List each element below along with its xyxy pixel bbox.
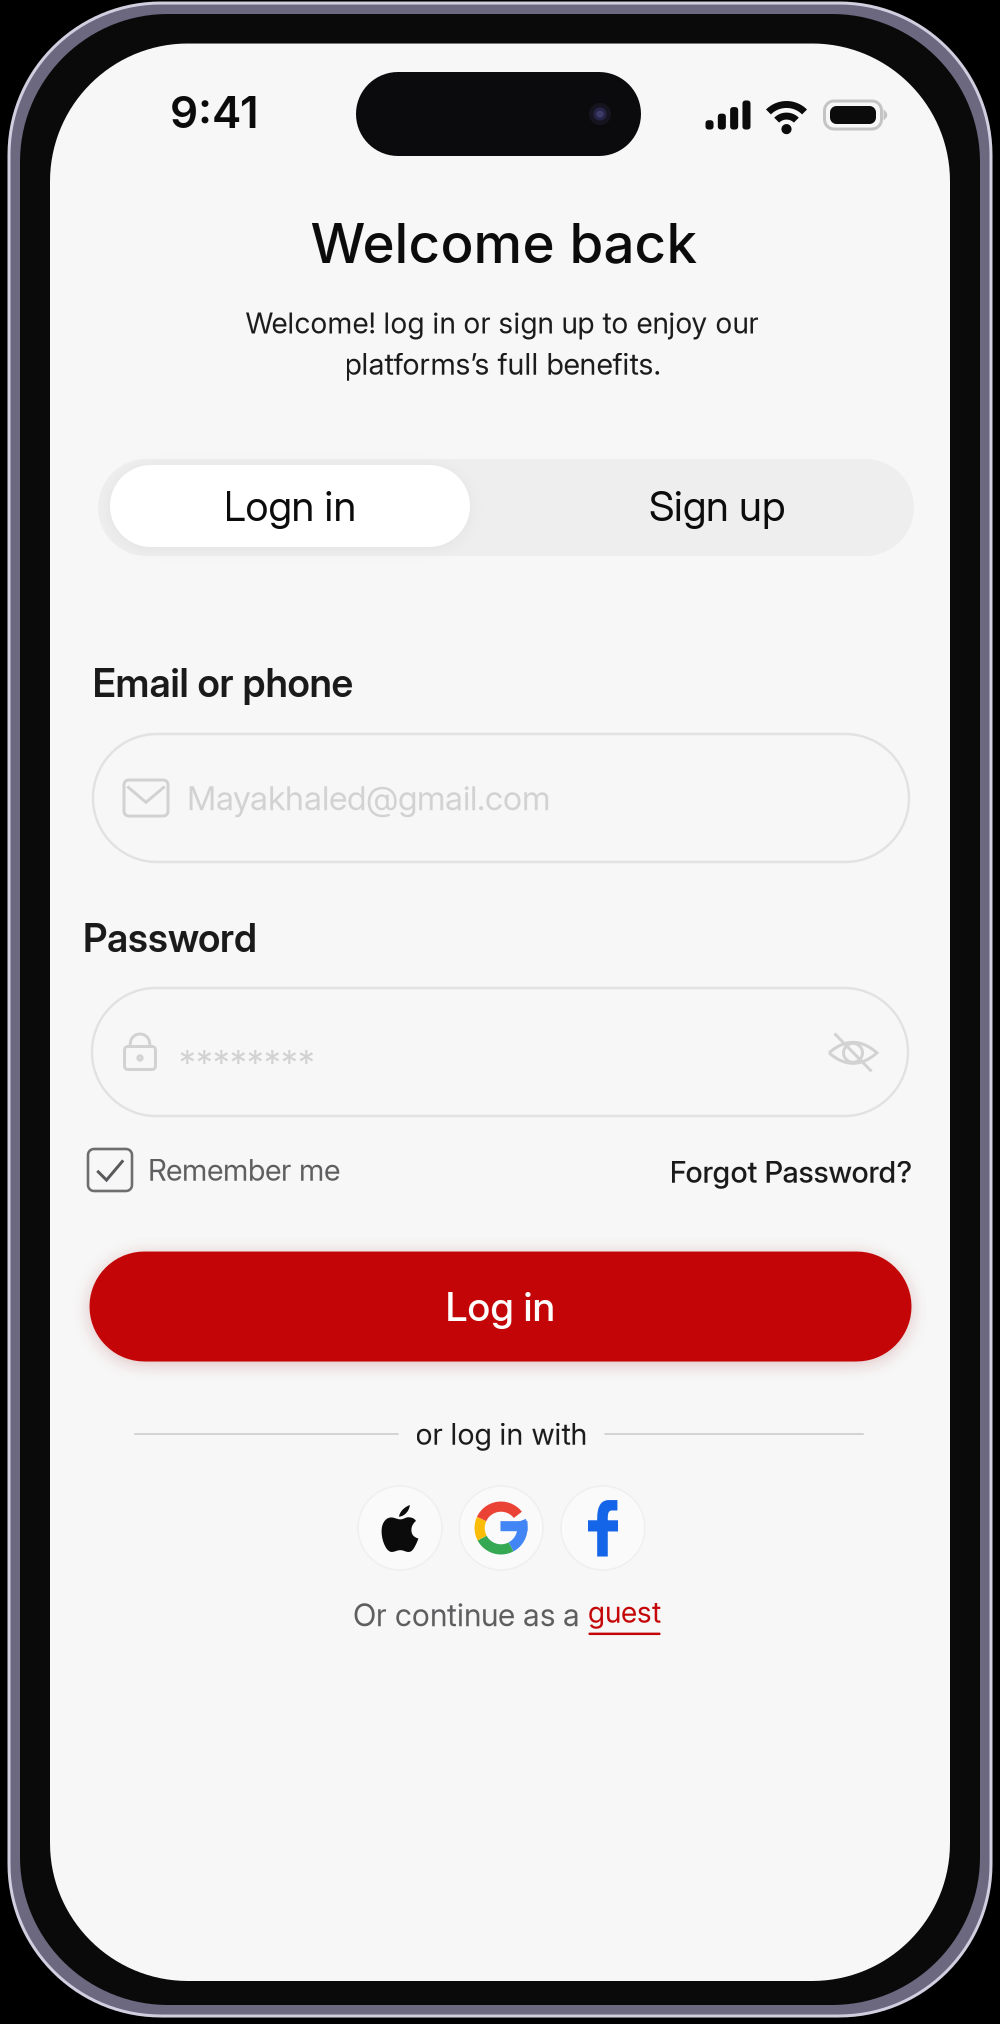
staticText: ******** <box>179 1042 315 1084</box>
button[interactable]: Forgot Password? <box>669 1154 912 1190</box>
button[interactable]: Logn in <box>110 465 470 547</box>
staticText: 9:41 <box>170 85 259 139</box>
staticText: Welcome! log in or sign up to enjoy our <box>245 306 758 340</box>
staticText: Password <box>83 915 257 961</box>
button[interactable]: Sign up <box>537 465 897 547</box>
staticText: Mayakhaled@gmail.com <box>187 778 550 818</box>
staticText: guest <box>588 1595 661 1630</box>
staticText: Email or phone <box>92 660 353 706</box>
staticText: Logn in <box>223 481 356 531</box>
button[interactable]: Log in <box>89 1251 911 1361</box>
button[interactable]: Mayakhaled@gmail.com <box>93 734 909 862</box>
staticText: Welcome back <box>310 210 697 276</box>
staticText: Forgot Password? <box>669 1154 912 1190</box>
staticText: Sign up <box>649 481 785 531</box>
button[interactable]: Or continue as a <box>353 1595 661 1635</box>
staticText: or log in with <box>415 1416 587 1452</box>
button[interactable]: Sign in with Facebook <box>561 1486 645 1570</box>
staticText: Remember me <box>148 1152 340 1188</box>
button[interactable]: Sign in with Apple <box>358 1486 442 1570</box>
button[interactable]: ******** <box>92 988 908 1116</box>
staticText: platforms’s full benefits. <box>344 346 661 382</box>
button[interactable]: Sign in with Google <box>459 1486 543 1570</box>
staticText: Or continue as a <box>353 1596 588 1633</box>
staticText: Log in <box>445 1282 555 1331</box>
button[interactable]: Remember me <box>88 1149 340 1191</box>
